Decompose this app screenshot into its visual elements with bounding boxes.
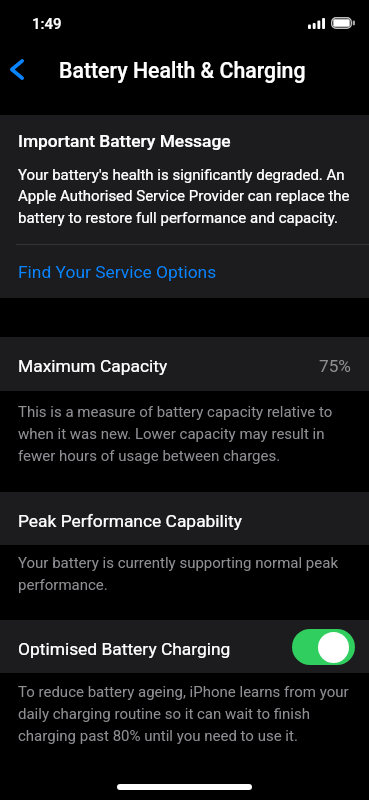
button[interactable]: Maximum Capacity <box>0 337 369 391</box>
staticText: Find Your Service Options <box>18 262 217 282</box>
staticText: Peak Performance Capability <box>18 510 242 532</box>
staticText: To reduce battery ageing, iPhone learns … <box>18 680 351 746</box>
staticText: 75% <box>319 356 351 376</box>
button[interactable]: Find Your Service Options <box>0 245 369 298</box>
staticText: Your battery's health is significantly d… <box>18 166 351 228</box>
staticText: This is a measure of battery capacity re… <box>18 400 351 466</box>
button[interactable]: Peak Performance Capability <box>0 492 369 545</box>
staticText: Maximum Capacity <box>18 355 168 377</box>
staticText: Your battery is currently supporting nor… <box>18 551 351 595</box>
staticText: Battery Health & Charging <box>59 58 306 83</box>
staticText: 1:49 <box>32 15 62 33</box>
button[interactable]: Optimised Battery Charging <box>292 629 355 665</box>
staticText: Optimised Battery Charging <box>18 638 231 660</box>
staticText: Important Battery Message <box>18 131 231 151</box>
button[interactable]: Back <box>0 47 45 92</box>
